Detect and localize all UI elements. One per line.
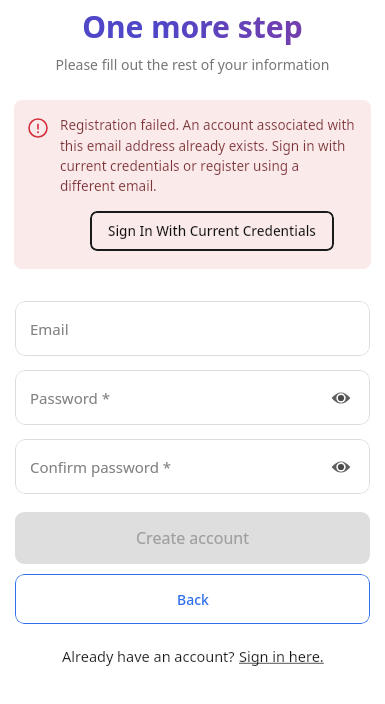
button[interactable]: Show password [327,453,355,481]
button[interactable]: Back [15,574,370,624]
button[interactable]: Sign in here. [239,646,324,666]
button[interactable]: Confirm password * [15,439,370,494]
staticText: One more step [0,6,385,47]
staticText: Confirm password * [30,457,327,477]
staticText: Create account [136,527,249,549]
button[interactable]: Show password [327,384,355,412]
staticText: Already have an account? [62,646,239,666]
staticText: Email [30,319,355,339]
staticText: Registration failed. An account associat… [60,116,355,195]
staticText: Sign in here. [239,646,324,666]
staticText: Back [177,590,209,609]
staticText: Please fill out the rest of your informa… [0,55,385,74]
button[interactable]: Create account [15,512,370,564]
button[interactable]: Sign In With Current Credentials [90,211,334,251]
staticText: Password * [30,388,327,408]
button[interactable]: Password * [15,370,370,425]
button[interactable]: Email [15,301,370,356]
staticText: Sign In With Current Credentials [108,222,316,240]
